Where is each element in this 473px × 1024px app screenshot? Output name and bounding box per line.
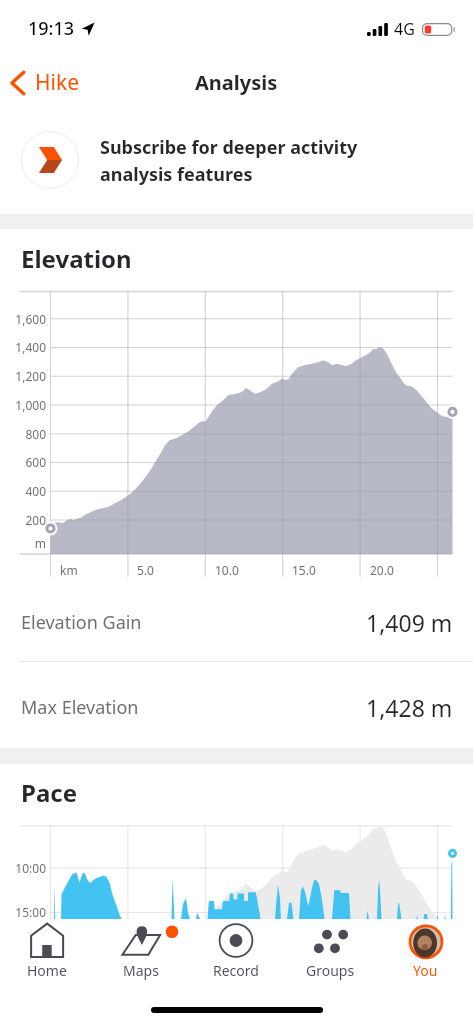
staticText: You: [413, 961, 438, 980]
button[interactable]: Maps: [94, 920, 188, 1024]
staticText: 1,428 m: [366, 692, 453, 723]
staticText: 19:13: [28, 16, 75, 41]
staticText: 15.0: [292, 562, 316, 578]
staticText: 800: [0, 426, 46, 442]
staticText: Groups: [306, 961, 355, 980]
button[interactable]: Elevation Gain: [0, 580, 473, 664]
button[interactable]: You: [378, 920, 473, 1024]
staticText: Hike: [35, 68, 80, 97]
button[interactable]: Hike: [0, 60, 92, 105]
staticText: Elevation: [21, 242, 132, 275]
staticText: 10:00: [0, 860, 46, 876]
staticText: Analysis: [195, 69, 278, 96]
other: Maps: [119, 920, 163, 964]
staticText: Elevation Gain: [21, 610, 142, 635]
staticText: 20.0: [370, 562, 394, 578]
staticText: 10.0: [215, 562, 239, 578]
staticText: Maps: [123, 961, 159, 980]
staticText: 1,400: [0, 339, 46, 355]
staticText: 200: [0, 512, 46, 528]
other: Groups: [309, 920, 353, 964]
staticText: km: [60, 562, 78, 578]
button[interactable]: Subscribe for deeper activity analysis f…: [0, 106, 473, 214]
staticText: 1,000: [0, 397, 46, 413]
staticText: Record: [213, 961, 259, 980]
staticText: Home: [27, 961, 67, 980]
staticText: 4G: [394, 18, 415, 40]
button[interactable]: Home: [0, 920, 94, 1024]
staticText: Pace: [21, 776, 77, 809]
staticText: Subscribe for deeper activity analysis f…: [100, 135, 358, 186]
staticText: 1,409 m: [366, 607, 453, 638]
staticText: 1,600: [0, 311, 46, 327]
button[interactable]: Groups: [283, 920, 378, 1024]
staticText: 5.0: [137, 562, 154, 578]
button[interactable]: Max Elevation: [0, 665, 473, 749]
staticText: Max Elevation: [21, 695, 139, 720]
staticText: 400: [0, 483, 46, 499]
staticText: 600: [0, 454, 46, 470]
other: Record: [214, 920, 258, 964]
other: Home: [25, 920, 69, 964]
staticText: m: [0, 535, 46, 551]
staticText: 1,200: [0, 368, 46, 384]
staticText: 15:00: [0, 904, 46, 920]
button[interactable]: Record: [188, 920, 283, 1024]
